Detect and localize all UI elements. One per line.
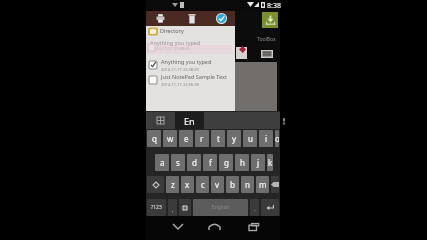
staticText: v (215, 179, 220, 190)
button[interactable]: q (147, 130, 161, 147)
staticText: Anything you typed (150, 39, 201, 46)
button[interactable]: z (166, 176, 179, 193)
button[interactable]: j (251, 154, 265, 171)
button[interactable]: c (196, 176, 209, 193)
staticText: y (232, 133, 237, 144)
button[interactable]: b (226, 176, 239, 193)
button[interactable]: r (195, 130, 209, 147)
staticText: i (265, 133, 268, 144)
staticText: g (224, 157, 229, 168)
button[interactable]: d (187, 154, 201, 171)
button[interactable]: Change keyboard language (179, 199, 191, 216)
button[interactable]: Back (167, 216, 189, 237)
button[interactable]: s (171, 154, 185, 171)
button[interactable]: g (219, 154, 233, 171)
staticText: u (248, 133, 253, 144)
button[interactable]: Confirm (214, 11, 228, 26)
staticText: e (184, 133, 189, 144)
button[interactable]: English (193, 199, 248, 216)
staticText: m (259, 179, 267, 190)
button[interactable]: Downloads (262, 12, 278, 28)
button[interactable]: En (175, 112, 204, 129)
staticText: ?123 (151, 204, 162, 211)
staticText: f (209, 157, 212, 168)
staticText: n (245, 179, 250, 190)
staticText: k (268, 157, 273, 168)
button[interactable]: k (267, 154, 273, 171)
button[interactable]: Home (203, 216, 225, 237)
staticText: Anything you typed (161, 58, 212, 65)
staticText: h (240, 157, 245, 168)
button[interactable]: Print (153, 11, 168, 26)
staticText: 2014-11-17 22:38:25 (152, 46, 190, 51)
button[interactable]: ?123 (147, 199, 166, 216)
staticText: Just NotePad Sample Text (161, 73, 227, 80)
staticText: t (217, 133, 220, 144)
button[interactable]: Unchecked item (146, 72, 235, 87)
staticText: o (275, 133, 279, 144)
button[interactable]: Directory (146, 26, 235, 37)
button[interactable]: h (235, 154, 249, 171)
button[interactable]: f (203, 154, 217, 171)
button[interactable]: e (179, 130, 193, 147)
button[interactable]: u (243, 130, 257, 147)
button[interactable]: x (181, 176, 194, 193)
button[interactable]: App (236, 47, 247, 59)
staticText: r (200, 133, 204, 144)
button[interactable]: m (256, 176, 269, 193)
button[interactable]: Unchecked item (149, 76, 157, 84)
staticText: , (172, 206, 174, 214)
button[interactable]: Print (146, 11, 235, 26)
staticText: c (201, 179, 205, 190)
button[interactable]: , (168, 199, 177, 216)
staticText: s (176, 157, 180, 168)
button[interactable]: . (250, 199, 259, 216)
staticText: w (167, 133, 174, 144)
staticText: a (160, 157, 165, 168)
staticText: Directory (160, 27, 184, 34)
button[interactable]: Backspace (271, 176, 279, 193)
staticText: 8:38 (267, 1, 281, 11)
button[interactable]: Input method (146, 112, 175, 129)
button[interactable]: Checked item (146, 57, 235, 72)
staticText: 2014-11-17 22:38:25 (161, 67, 199, 72)
button[interactable]: w (163, 130, 177, 147)
staticText: ToolBox (257, 36, 276, 43)
button[interactable]: i (259, 130, 273, 147)
button[interactable]: o (275, 130, 279, 147)
button[interactable]: v (211, 176, 224, 193)
button[interactable]: Checked item (149, 61, 157, 69)
staticText: z (171, 179, 175, 190)
staticText: 2014-11-17 22:36:38 (161, 82, 199, 87)
staticText: En (184, 115, 195, 127)
button[interactable]: Delete (184, 11, 199, 26)
button[interactable]: Recent apps (243, 216, 265, 237)
staticText: x (185, 179, 190, 190)
staticText: j (257, 157, 260, 168)
staticText: d (192, 157, 197, 168)
staticText: q (152, 133, 157, 144)
button[interactable]: a (155, 154, 169, 171)
button[interactable]: n (241, 176, 254, 193)
button[interactable]: Screen app (261, 50, 273, 58)
button[interactable]: Shift (147, 176, 164, 193)
button[interactable]: t (211, 130, 225, 147)
staticText: English (212, 204, 230, 211)
button[interactable]: Enter (261, 199, 279, 216)
button[interactable]: y (227, 130, 241, 147)
staticText: b (230, 179, 235, 190)
staticText: . (254, 205, 256, 213)
